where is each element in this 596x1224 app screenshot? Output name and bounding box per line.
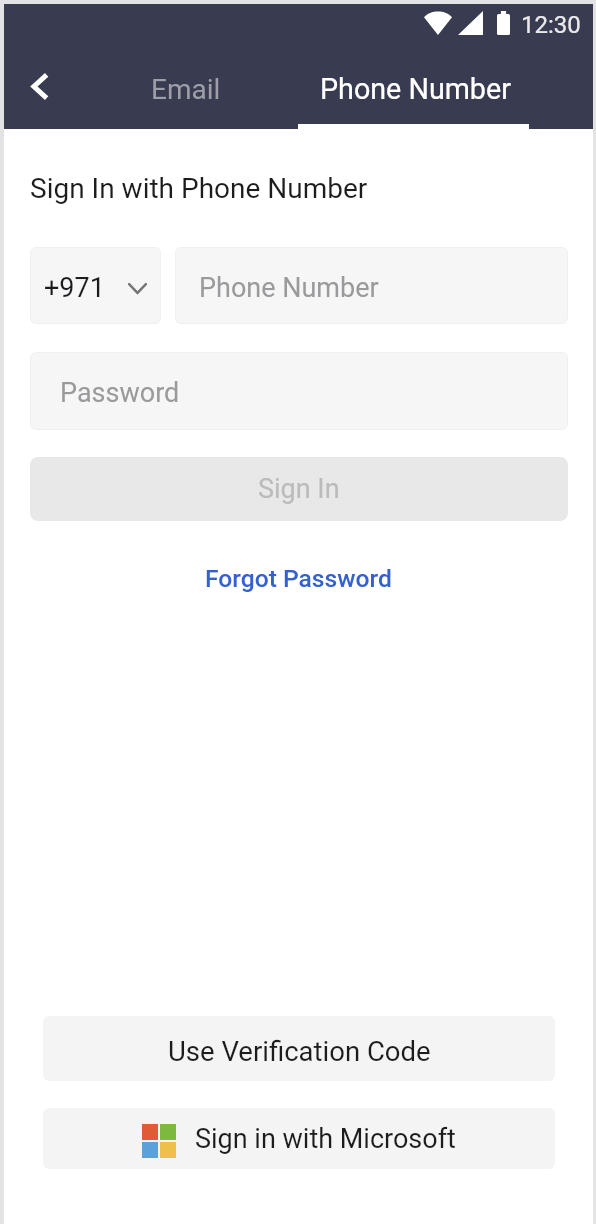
button[interactable]: Forgot Password	[195, 560, 402, 597]
staticText: Sign in with Microsoft	[195, 1123, 456, 1155]
staticText: Forgot Password	[205, 564, 392, 593]
button[interactable]: Email	[112, 45, 260, 133]
button[interactable]: Sign in with Microsoft	[43, 1108, 555, 1169]
button[interactable]: +971	[30, 247, 161, 324]
staticText: Email	[151, 73, 221, 106]
staticText: Phone Number	[199, 272, 379, 304]
button[interactable]: Password	[30, 352, 568, 430]
staticText: Phone Number	[320, 72, 511, 106]
staticText: 12:30	[521, 11, 581, 39]
staticText: Password	[60, 377, 180, 409]
button[interactable]: Sign In	[30, 457, 568, 521]
button[interactable]: Back	[19, 66, 59, 106]
button[interactable]: Phone Number	[175, 247, 568, 324]
staticText: Use Verification Code	[168, 1035, 431, 1067]
staticText: +971	[44, 272, 105, 304]
button[interactable]: Phone Number	[298, 45, 533, 133]
button[interactable]: Use Verification Code	[43, 1016, 555, 1081]
staticText: Sign In	[258, 473, 340, 505]
staticText: Sign In with Phone Number	[30, 172, 368, 205]
